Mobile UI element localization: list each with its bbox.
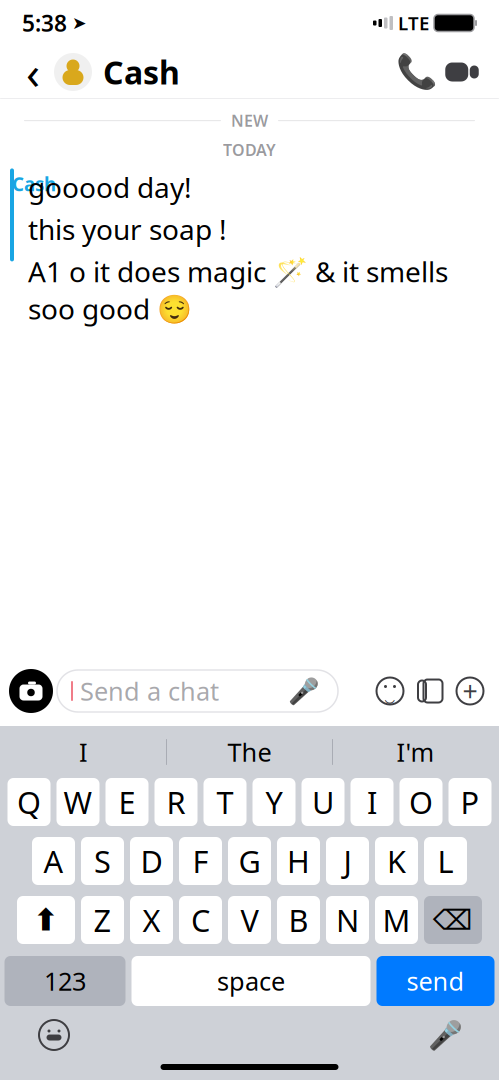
staticText: P [460,782,479,822]
staticText: send [406,964,464,998]
button[interactable]: E [105,778,148,826]
button[interactable]: P [448,778,491,826]
staticText: ⬆ [33,903,59,937]
button[interactable]: I [1,729,166,775]
staticText: ‿ [384,681,395,704]
button[interactable]: B [277,896,320,944]
button[interactable]: 123 [4,956,125,1006]
staticText: TODAY [223,139,276,160]
button[interactable]: Delete [424,896,482,944]
staticText: Q [17,782,41,822]
button[interactable]: send [376,956,494,1006]
staticText: The [227,735,271,769]
staticText: A1 o it does magic 🪄 & it smells soo goo… [28,253,448,327]
button[interactable]: Z [81,896,124,944]
button[interactable]: space [131,956,370,1006]
staticText: gooood day! [28,168,192,206]
button[interactable]: K [375,837,418,885]
staticText: Z [93,900,111,940]
button[interactable]: O [399,778,442,826]
staticText: X [142,900,160,940]
staticText: W [63,782,92,822]
button[interactable]: I [350,778,393,826]
staticText: ➤ [72,13,87,33]
staticText: T [216,782,233,822]
button[interactable]: Y [252,778,295,826]
button[interactable]: Video call [439,50,485,94]
staticText: Cash [103,51,180,93]
staticText: F [192,841,208,881]
staticText: Cash [12,171,56,196]
button[interactable]: I'm [333,729,498,775]
staticText: D [140,841,162,881]
button[interactable]: R [154,778,197,826]
staticText: 🎤 [427,1019,462,1051]
button[interactable]: Emoji keyboard [28,1013,80,1057]
staticText: K [387,841,406,881]
button[interactable]: A [32,837,75,885]
staticText: ⌫ [433,904,473,936]
staticText: NEW [231,110,268,131]
staticText: I'm [396,735,434,769]
staticText: Send a chat [80,674,219,708]
button[interactable]: X [130,896,173,944]
staticText: Y [265,782,282,822]
staticText: space [217,964,285,998]
button[interactable]: Q [7,778,50,826]
staticText: I [367,782,377,822]
staticText: 🎤 [288,676,320,705]
staticText: 📞 [396,53,438,91]
staticText: S [94,841,111,881]
staticText: E [118,782,135,822]
button[interactable]: The [167,729,332,775]
button[interactable]: C [179,896,222,944]
button[interactable]: M [375,896,418,944]
staticText: LTE [398,11,429,35]
button[interactable]: Dictation [419,1013,471,1057]
staticText: 5:38 [22,8,67,38]
staticText: A [43,841,63,881]
staticText: G [238,841,260,881]
staticText: C [191,900,210,940]
staticText: ‹ [26,42,40,102]
button[interactable]: U [301,778,344,826]
staticText: 123 [44,964,86,998]
staticText: + [462,673,477,709]
staticText: U [312,782,334,822]
staticText: L [437,841,453,881]
button[interactable]: Shift [17,896,75,944]
button[interactable]: G [228,837,271,885]
staticText: N [336,900,359,940]
button[interactable]: Send media [409,668,449,714]
button[interactable]: Back [12,49,54,95]
staticText: V [240,900,258,940]
staticText: M [382,900,410,940]
staticText: R [166,782,185,822]
button[interactable]: L [424,837,467,885]
button[interactable]: Cash [54,51,188,93]
button[interactable]: Stickers [371,668,409,714]
button[interactable]: V [228,896,271,944]
button[interactable]: J [326,837,369,885]
button[interactable]: F [179,837,222,885]
staticText: H [287,841,310,881]
button[interactable]: T [203,778,246,826]
button[interactable]: More options [449,668,491,714]
staticText: I [79,735,88,769]
button[interactable]: Voice call [395,50,439,94]
button[interactable]: N [326,896,369,944]
button[interactable]: Send a chat [57,670,338,712]
button[interactable]: S [81,837,124,885]
staticText: B [288,900,308,940]
button[interactable]: Camera [5,665,57,717]
button[interactable]: W [56,778,99,826]
staticText: this your soap ! [28,211,227,248]
button[interactable]: D [130,837,173,885]
staticText: O [409,782,433,822]
button[interactable]: H [277,837,320,885]
staticText: J [343,841,351,881]
